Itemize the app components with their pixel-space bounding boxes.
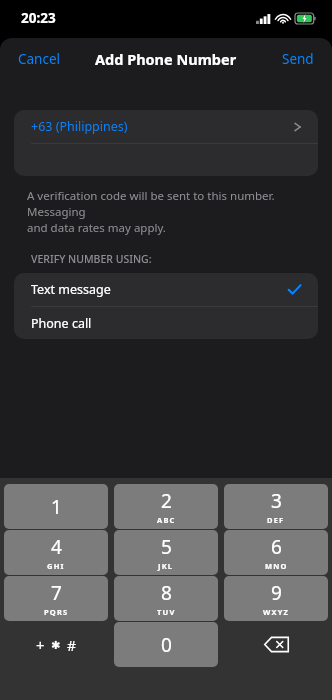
staticText: 5 <box>161 534 172 560</box>
button[interactable]: Cancel <box>0 42 79 76</box>
button[interactable]: 9 <box>224 576 328 621</box>
button[interactable]: Phone call <box>14 307 318 339</box>
staticText: 4 <box>51 534 62 560</box>
staticText: 0 <box>161 632 172 658</box>
button[interactable]: 4 <box>4 530 108 575</box>
staticText: Text message <box>31 281 288 298</box>
staticText: GHI <box>47 561 65 571</box>
staticText: +63 (Philippines) <box>31 118 294 135</box>
button[interactable]: Backspace <box>224 622 328 667</box>
staticText: + <box>36 635 45 655</box>
staticText: Cancel <box>18 50 61 68</box>
staticText: Send <box>282 50 314 68</box>
staticText: 3 <box>271 488 282 514</box>
button[interactable]: Send <box>264 42 332 76</box>
staticText: Phone call <box>31 315 92 332</box>
staticText: Add Phone Number <box>95 49 237 69</box>
staticText: TUV <box>157 607 176 617</box>
staticText: WXYZ <box>263 607 290 617</box>
staticText: PQRS <box>44 607 69 617</box>
button[interactable]: Text message <box>14 273 318 306</box>
staticText: VERIFY NUMBER USING: <box>31 252 152 266</box>
button[interactable]: 0 <box>114 622 218 667</box>
button[interactable]: + <box>4 622 108 667</box>
button[interactable]: 3 <box>224 484 328 529</box>
staticText: MNO <box>265 561 288 571</box>
staticText: ✱ <box>51 639 61 652</box>
staticText: A verification code will be sent to this… <box>27 188 316 236</box>
staticText: 2 <box>161 488 172 514</box>
staticText: # <box>67 636 77 655</box>
staticText: 9 <box>271 580 282 606</box>
button[interactable]: 1 <box>4 484 108 529</box>
button[interactable]: 8 <box>114 576 218 621</box>
button[interactable]: 2 <box>114 484 218 529</box>
button[interactable]: 7 <box>4 576 108 621</box>
staticText: JKL <box>158 561 174 571</box>
staticText: 7 <box>51 580 62 606</box>
staticText: ABC <box>157 515 176 525</box>
staticText: 1 <box>51 494 62 520</box>
staticText: DEF <box>267 515 285 525</box>
staticText: 20:23 <box>21 9 56 27</box>
button[interactable]: 6 <box>224 530 328 575</box>
staticText: 6 <box>271 534 282 560</box>
staticText: 8 <box>161 580 172 606</box>
button[interactable]: +63 (Philippines) <box>14 110 318 143</box>
button[interactable]: 5 <box>114 530 218 575</box>
